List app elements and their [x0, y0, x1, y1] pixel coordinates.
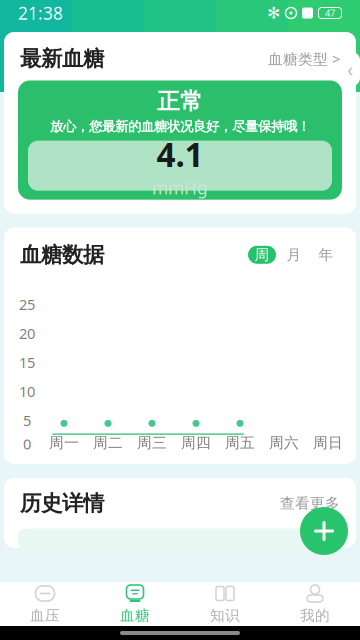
button[interactable]: 周: [248, 246, 276, 264]
staticText: 周三: [137, 434, 167, 452]
staticText: 15: [19, 353, 35, 372]
staticText: 0: [23, 434, 31, 454]
staticText: 周: [254, 246, 269, 264]
staticText: 血压: [30, 606, 60, 624]
staticText: 4.1: [156, 132, 203, 176]
button[interactable]: 展开侧边栏: [340, 52, 360, 86]
staticText: 21:38: [18, 1, 63, 24]
button[interactable]: 知识: [180, 582, 270, 626]
staticText: 20: [19, 324, 35, 343]
staticText: 最新血糖: [20, 46, 104, 72]
staticText: 血糖类型 >: [268, 49, 340, 68]
staticText: 47: [325, 7, 335, 19]
staticText: 知识: [210, 606, 240, 624]
staticText: 历史详情: [20, 490, 104, 516]
staticText: 血糖数据: [20, 242, 104, 268]
staticText: ‹: [347, 56, 353, 82]
staticText: 血糖: [120, 606, 150, 624]
staticText: 放心，您最新的血糖状况良好，尽量保持哦！: [50, 118, 310, 135]
button[interactable]: 血糖类型 >: [268, 45, 340, 72]
staticText: ✻: [267, 4, 280, 22]
button[interactable]: 血压: [0, 582, 90, 626]
staticText: 我的: [300, 606, 330, 624]
button[interactable]: 添加记录: [300, 507, 348, 555]
staticText: mmHg: [152, 176, 208, 199]
staticText: 周二: [93, 434, 123, 452]
staticText: 5: [23, 411, 31, 430]
staticText: 血糖: [16, 30, 62, 58]
staticText: 周四: [181, 434, 211, 452]
button[interactable]: 我的: [270, 582, 360, 626]
button[interactable]: 查看更多: [280, 490, 340, 516]
button[interactable]: 月: [280, 246, 308, 264]
staticText: 周一: [49, 434, 79, 452]
staticText: 周五: [225, 434, 255, 452]
staticText: 年: [318, 246, 333, 264]
staticText: 周日: [313, 434, 343, 452]
staticText: 正常: [157, 87, 203, 115]
staticText: 10: [19, 382, 35, 401]
staticText: 月: [286, 246, 301, 264]
button[interactable]: 年: [312, 246, 340, 264]
staticText: 查看更多: [280, 494, 340, 512]
button[interactable]: 血糖: [90, 582, 180, 626]
staticText: 周六: [269, 434, 299, 452]
staticText: 25: [19, 295, 35, 314]
